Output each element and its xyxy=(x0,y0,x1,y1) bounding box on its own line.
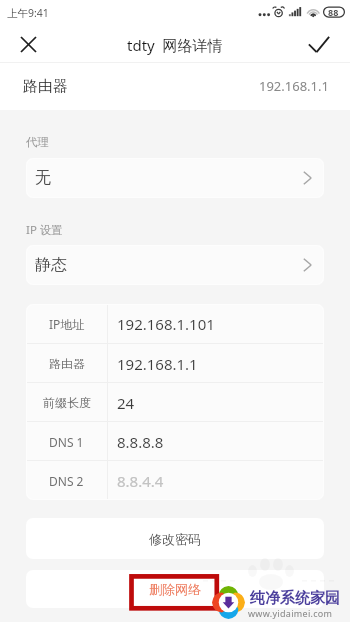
button[interactable]: Close xyxy=(15,31,41,57)
button[interactable]: 前缀长度 xyxy=(26,383,324,422)
staticText: www.yidaimei.com xyxy=(248,607,333,619)
staticText: 8.8.8.8 xyxy=(117,432,164,452)
staticText: tdty 网络详情 xyxy=(127,35,223,55)
staticText: 88 xyxy=(328,6,339,18)
staticText: IP 设置 xyxy=(26,222,63,238)
button[interactable]: Confirm xyxy=(305,30,333,58)
button[interactable]: 路由器 xyxy=(26,344,324,383)
staticText: 修改密码 xyxy=(149,531,201,547)
staticText: 前缀长度 xyxy=(43,395,91,410)
button[interactable]: 路由器 xyxy=(0,62,350,110)
staticText: 192.168.1.101 xyxy=(117,314,215,334)
staticText: IP地址 xyxy=(49,316,85,332)
staticText: DNS 1 xyxy=(49,434,84,450)
staticText: 192.168.1.1 xyxy=(117,354,198,374)
staticText: DNS 2 xyxy=(49,473,84,489)
button[interactable]: 修改密码 xyxy=(26,518,324,559)
staticText: 无 xyxy=(35,168,51,188)
staticText: 删除网络 xyxy=(149,581,201,597)
staticText: 代理 xyxy=(26,135,49,149)
staticText: 24 xyxy=(117,393,135,413)
staticText: 路由器 xyxy=(23,77,68,96)
staticText: 纯净系统家园 xyxy=(250,589,340,608)
staticText: 8.8.4.4 xyxy=(117,471,164,491)
button[interactable]: DNS 1 xyxy=(26,422,324,461)
button[interactable]: 静态 xyxy=(26,245,324,285)
button[interactable]: 删除网络 xyxy=(26,570,324,608)
staticText: 路由器 xyxy=(49,356,85,371)
button[interactable]: IP地址 xyxy=(26,304,324,344)
button[interactable]: 无 xyxy=(26,158,324,198)
staticText: 静态 xyxy=(35,255,67,275)
button[interactable]: DNS 2 xyxy=(26,461,324,500)
staticText: 192.168.1.1 xyxy=(259,77,329,95)
staticText: 上午9:41 xyxy=(7,6,49,20)
